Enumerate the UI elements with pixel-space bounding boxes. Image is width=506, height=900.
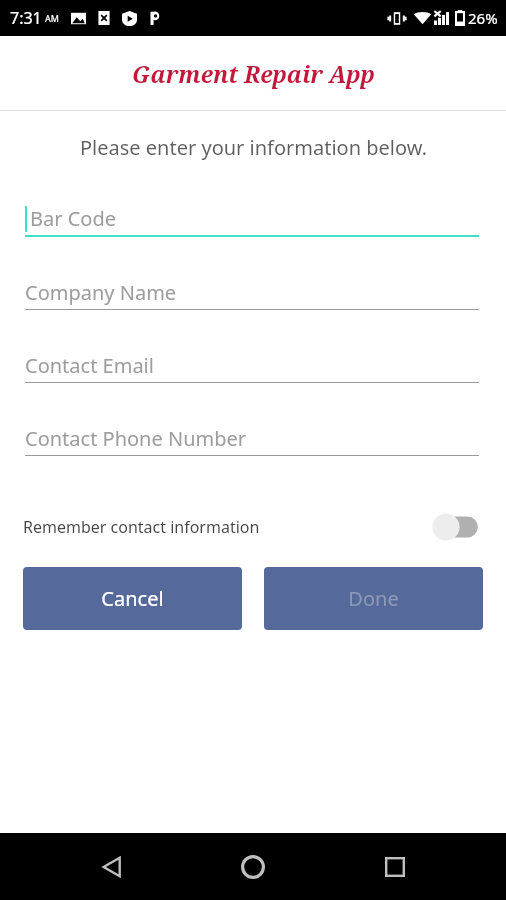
button[interactable]: Contact Phone Number: [0, 421, 506, 456]
button[interactable]: Contact Email: [0, 348, 506, 383]
staticText: Cancel: [101, 585, 164, 612]
staticText: Bar Code: [30, 205, 116, 232]
staticText: Done: [348, 585, 399, 612]
button[interactable]: Home: [223, 837, 283, 897]
button[interactable]: Back: [82, 837, 142, 897]
staticText: Contact Email: [25, 352, 154, 379]
staticText: Company Name: [25, 279, 177, 306]
button[interactable]: Remember contact information: [0, 504, 506, 550]
staticText: Remember contact information: [23, 516, 260, 538]
staticText: Garment Repair App: [132, 58, 375, 89]
staticText: AM: [45, 12, 59, 24]
button[interactable]: Company Name: [0, 275, 506, 310]
button[interactable]: Cancel: [23, 567, 242, 630]
staticText: 26%: [468, 8, 498, 28]
button[interactable]: Recent apps: [365, 837, 425, 897]
button[interactable]: Done: [264, 567, 483, 630]
button[interactable]: Bar Code: [0, 201, 506, 237]
staticText: 7:31: [10, 7, 42, 29]
button[interactable]: Remember contact information toggle: [431, 510, 483, 544]
staticText: Please enter your information below.: [80, 134, 427, 161]
staticText: Contact Phone Number: [25, 425, 247, 452]
